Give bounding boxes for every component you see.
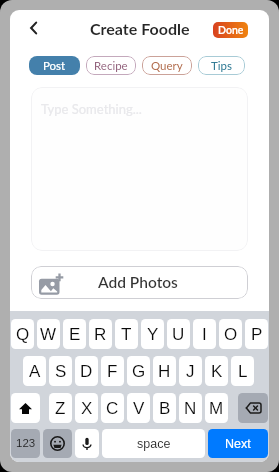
button[interactable]: C [101, 393, 124, 423]
staticText: Done [218, 24, 244, 37]
button[interactable]: H [153, 356, 176, 386]
staticText: O [224, 325, 238, 344]
staticText: Q [16, 325, 30, 344]
staticText: E [69, 325, 81, 344]
button[interactable]: U [167, 319, 190, 349]
staticText: space [137, 437, 171, 451]
button[interactable]: S [49, 356, 72, 386]
staticText: Z [55, 399, 66, 418]
staticText: 123 [16, 437, 36, 450]
staticText: H [158, 362, 171, 381]
staticText: Next [225, 437, 251, 451]
button[interactable]: Add Photos [31, 266, 248, 299]
button[interactable]: R [89, 319, 112, 349]
button[interactable]: Emoji [43, 429, 72, 458]
staticText: F [107, 362, 118, 381]
staticText: X [81, 399, 93, 418]
button[interactable]: O [219, 319, 242, 349]
staticText: Recipe [94, 59, 128, 73]
staticText: P [251, 325, 263, 344]
staticText: Query [151, 59, 183, 73]
button[interactable]: Query [142, 56, 192, 75]
staticText: A [29, 362, 41, 381]
staticText: G [132, 362, 146, 381]
button[interactable]: F [101, 356, 124, 386]
button[interactable]: Voice input [75, 429, 99, 458]
button[interactable]: W [37, 319, 60, 349]
button[interactable]: E [63, 319, 86, 349]
button[interactable]: Next [208, 429, 268, 458]
staticText: D [80, 362, 93, 381]
button[interactable]: L [231, 356, 254, 386]
button[interactable]: D [75, 356, 98, 386]
staticText: I [202, 325, 207, 344]
button[interactable]: I [193, 319, 216, 349]
button[interactable]: N [179, 393, 202, 423]
staticText: Add Photos [98, 273, 178, 292]
button[interactable]: Back [19, 13, 49, 43]
button[interactable]: Post [29, 56, 80, 75]
staticText: Create Foodle [90, 19, 190, 38]
staticText: N [184, 399, 197, 418]
button[interactable]: V [127, 393, 150, 423]
button[interactable]: Z [49, 393, 72, 423]
staticText: B [159, 399, 171, 418]
button[interactable]: Q [11, 319, 34, 349]
button[interactable]: M [205, 393, 228, 423]
button[interactable]: A [23, 356, 46, 386]
staticText: Y [147, 325, 159, 344]
staticText: M [209, 399, 224, 418]
button[interactable]: Tips [198, 56, 245, 75]
staticText: J [186, 362, 195, 381]
button[interactable]: X [75, 393, 98, 423]
button[interactable]: T [115, 319, 138, 349]
staticText: L [238, 362, 248, 381]
staticText: C [106, 399, 119, 418]
staticText: S [55, 362, 67, 381]
button[interactable]: P [245, 319, 268, 349]
button[interactable]: Shift [11, 393, 40, 423]
button[interactable]: G [127, 356, 150, 386]
staticText: Tips [211, 59, 232, 73]
staticText: Type Something... [41, 101, 142, 117]
button[interactable]: J [179, 356, 202, 386]
staticText: T [121, 325, 132, 344]
staticText: U [172, 325, 185, 344]
button[interactable]: 123 [11, 429, 40, 458]
staticText: Post [43, 59, 66, 73]
button[interactable]: Recipe [86, 56, 136, 75]
button[interactable]: K [205, 356, 228, 386]
button[interactable]: space [102, 429, 205, 458]
button[interactable]: Y [141, 319, 164, 349]
button[interactable]: Backspace [238, 393, 268, 423]
staticText: V [133, 399, 145, 418]
staticText: R [94, 325, 107, 344]
staticText: W [40, 325, 57, 344]
button[interactable]: B [153, 393, 176, 423]
button[interactable]: Done [213, 22, 248, 38]
staticText: K [211, 362, 223, 381]
